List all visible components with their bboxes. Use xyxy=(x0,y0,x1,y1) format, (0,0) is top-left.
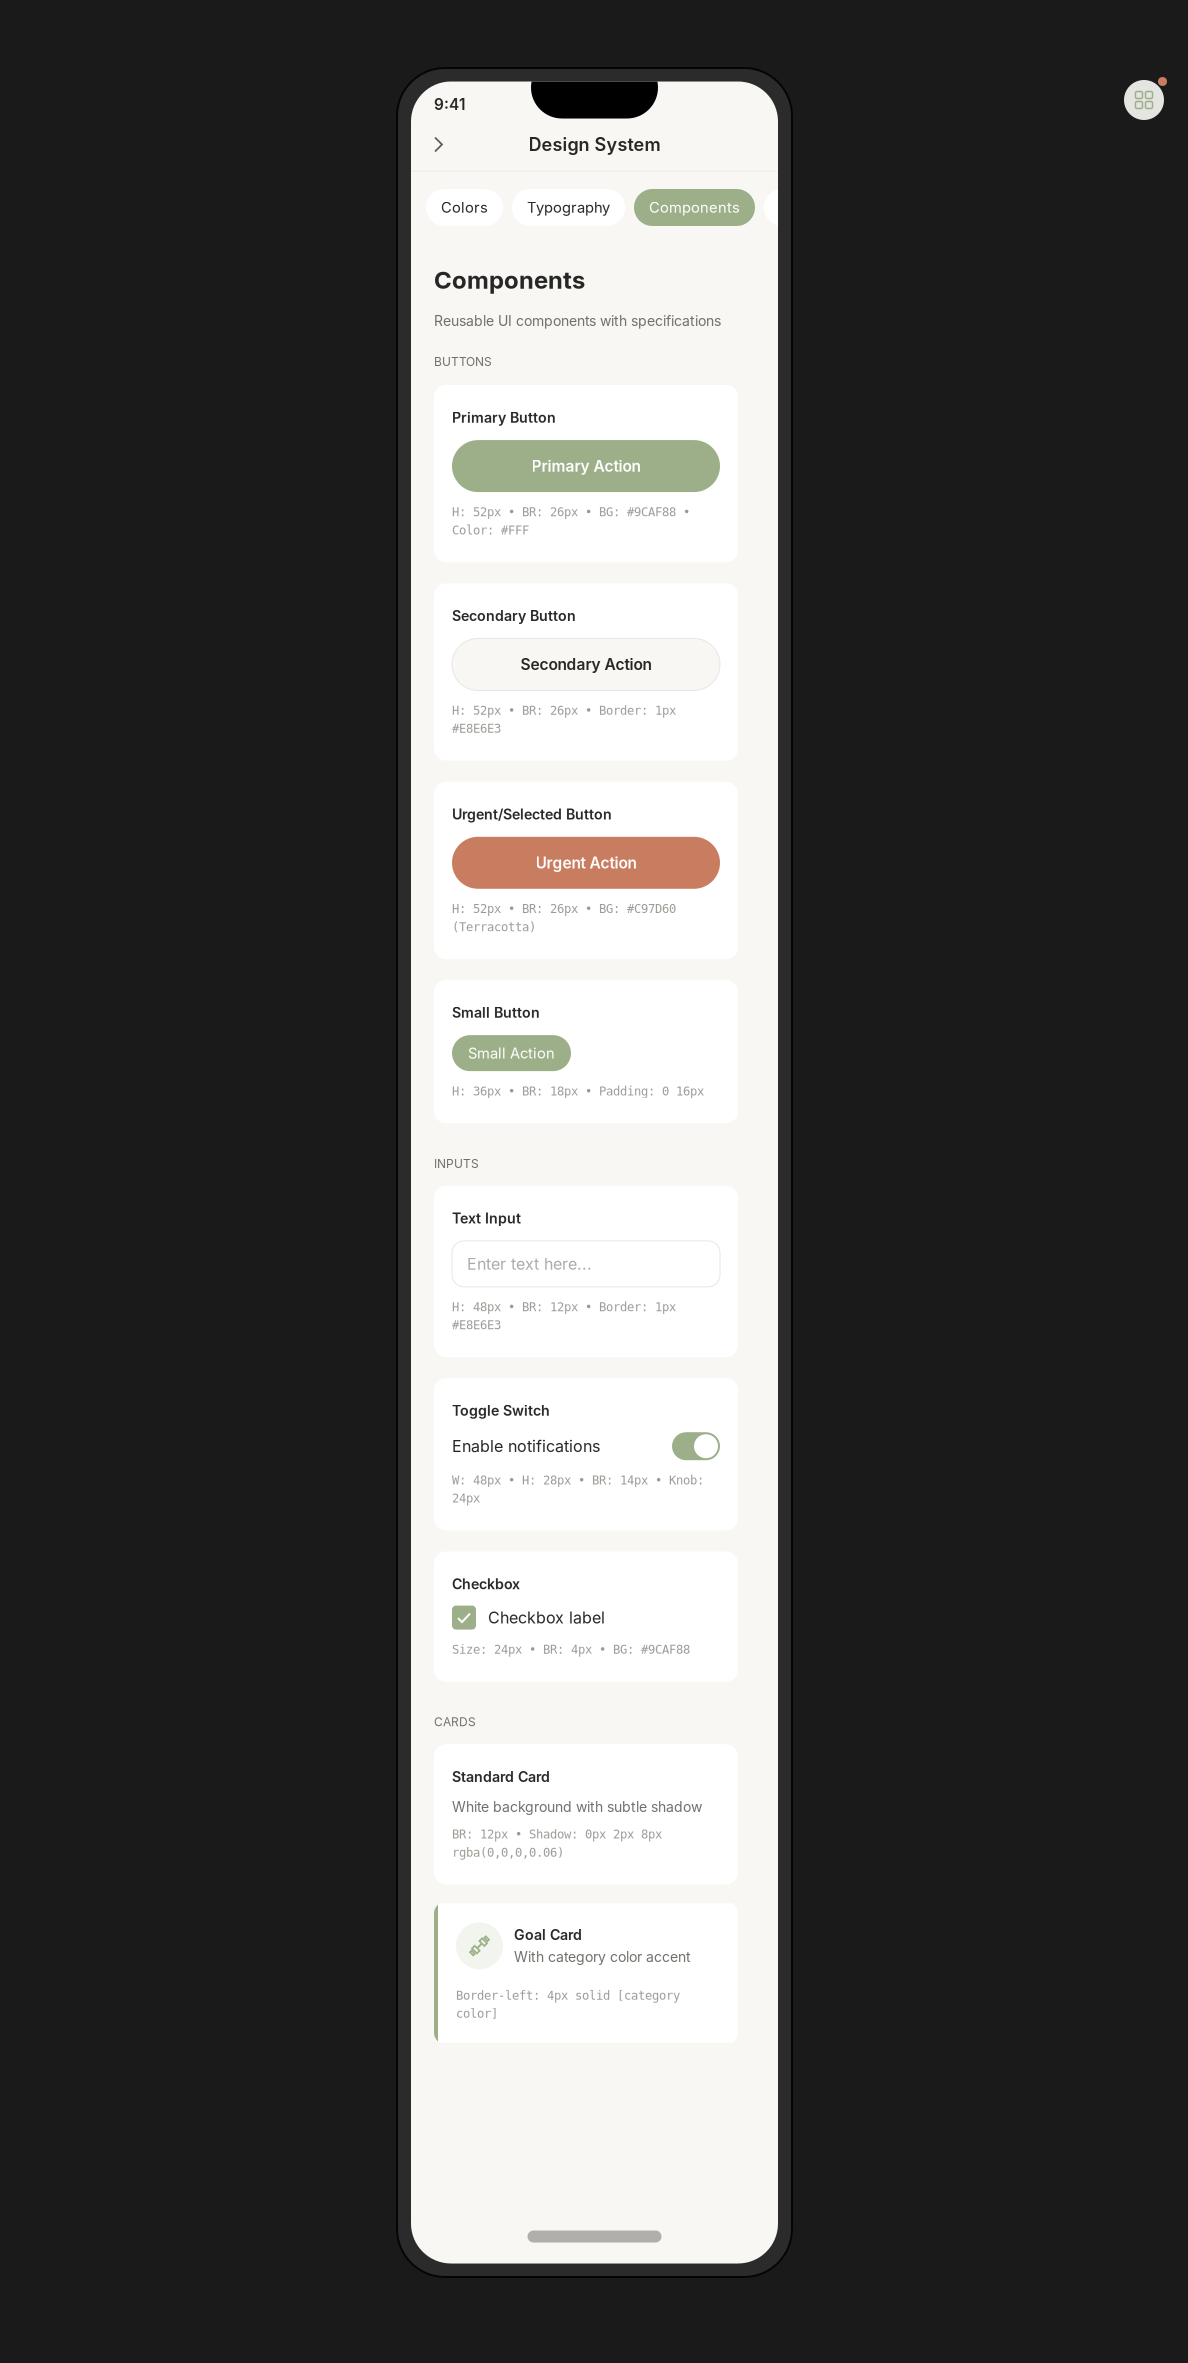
button[interactable]: Typography xyxy=(512,189,625,226)
button[interactable]: Components xyxy=(1124,80,1164,120)
staticText: Checkbox label xyxy=(488,1608,605,1627)
staticText: With category color accent xyxy=(514,1948,691,1965)
button[interactable]: Primary Action xyxy=(452,440,720,492)
staticText: Goal Card xyxy=(514,1926,582,1943)
staticText: 9:41 xyxy=(434,95,465,114)
staticText: Secondary Button xyxy=(452,607,576,624)
button[interactable]: Back xyxy=(424,129,454,159)
staticText: Enable notifications xyxy=(452,1436,600,1456)
staticText: Small Button xyxy=(452,1004,540,1021)
staticText: Components xyxy=(434,265,585,294)
staticText: Border-left: 4px solid [category color] xyxy=(456,1988,680,2021)
button[interactable]: Checkbox label xyxy=(452,1606,476,1630)
button[interactable]: Colors xyxy=(426,189,503,226)
button[interactable]: Secondary Action xyxy=(452,638,720,690)
staticText: Reusable UI components with specificatio… xyxy=(434,312,721,329)
staticText: Text Input xyxy=(452,1210,521,1227)
staticText: Typography xyxy=(527,199,610,216)
staticText: Colors xyxy=(441,199,488,216)
staticText: INPUTS xyxy=(434,1156,479,1171)
staticText: CARDS xyxy=(434,1715,476,1729)
staticText: Primary Action xyxy=(531,457,640,475)
button[interactable]: Small Action xyxy=(452,1035,571,1071)
staticText: Design System xyxy=(528,134,660,155)
staticText: Spacing xyxy=(779,199,835,216)
staticText: BR: 12px • Shadow: 0px 2px 8px rgba(0,0,… xyxy=(452,1827,662,1859)
staticText: Secondary Action xyxy=(520,655,651,674)
staticText: BUTTONS xyxy=(434,354,492,369)
staticText: H: 36px • BR: 18px • Padding: 0 16px xyxy=(452,1084,704,1098)
staticText: H: 48px • BR: 12px • Border: 1px #E8E6E3 xyxy=(452,1300,676,1332)
button[interactable]: Components xyxy=(634,189,755,226)
staticText: Checkbox xyxy=(452,1575,520,1593)
button[interactable]: Urgent Action xyxy=(452,837,720,889)
staticText: Standard Card xyxy=(452,1768,550,1785)
staticText: Size: 24px • BR: 4px • BG: #9CAF88 xyxy=(452,1643,690,1657)
staticText: H: 52px • BR: 26px • BG: #C97D60 (Terrac… xyxy=(452,902,676,934)
staticText: Components xyxy=(649,199,740,216)
staticText: Toggle Switch xyxy=(452,1402,550,1419)
button[interactable]: Enable notifications xyxy=(672,1432,720,1460)
staticText: H: 52px • BR: 26px • BG: #9CAF88 • Color… xyxy=(452,505,690,537)
staticText: Urgent Action xyxy=(535,853,636,872)
button[interactable]: Spacing xyxy=(764,189,850,226)
staticText: W: 48px • H: 28px • BR: 14px • Knob: 24p… xyxy=(452,1473,704,1505)
staticText: H: 52px • BR: 26px • Border: 1px #E8E6E3 xyxy=(452,703,676,736)
staticText: Primary Button xyxy=(452,409,556,426)
staticText: Urgent/Selected Button xyxy=(452,806,612,823)
staticText: Enter text here... xyxy=(467,1254,592,1274)
staticText: Small Action xyxy=(468,1044,555,1062)
staticText: White background with subtle shadow xyxy=(452,1798,702,1815)
